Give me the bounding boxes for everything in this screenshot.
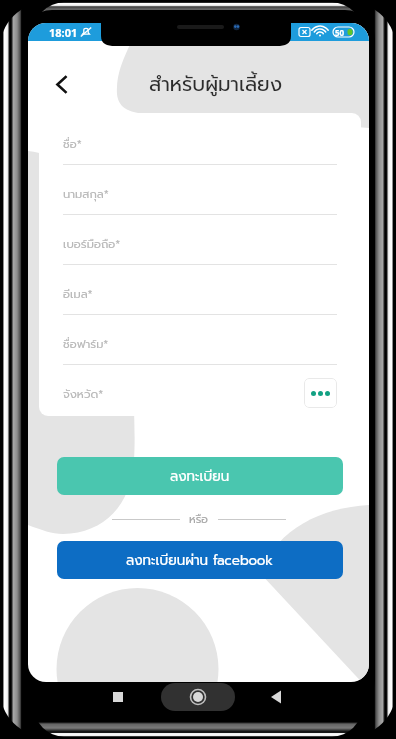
staticText: 50 <box>335 27 345 38</box>
staticText: ลงทะเบียน <box>170 466 230 486</box>
staticText: 18:01 <box>49 25 78 40</box>
staticText: ลงทะเบียนผ่าน facebook <box>126 550 274 570</box>
staticText: อีเมล* <box>63 285 93 302</box>
staticText: ชื่อ* <box>63 135 82 152</box>
staticText: ชื่อฟาร์ม* <box>63 335 109 352</box>
staticText: จังหวัด* <box>63 385 104 402</box>
staticText: สำหรับผู้มาเลี้ยง <box>149 69 283 99</box>
staticText: นามสกุล* <box>63 185 109 202</box>
button[interactable]: ลงทะเบียน <box>57 457 343 495</box>
staticText: เบอร์มือถือ* <box>63 235 121 252</box>
button[interactable]: Back <box>45 68 77 100</box>
button[interactable]: ลงทะเบียนผ่าน facebook <box>57 541 343 579</box>
staticText: หรือ <box>189 511 209 528</box>
button[interactable]: Select province <box>304 378 337 408</box>
